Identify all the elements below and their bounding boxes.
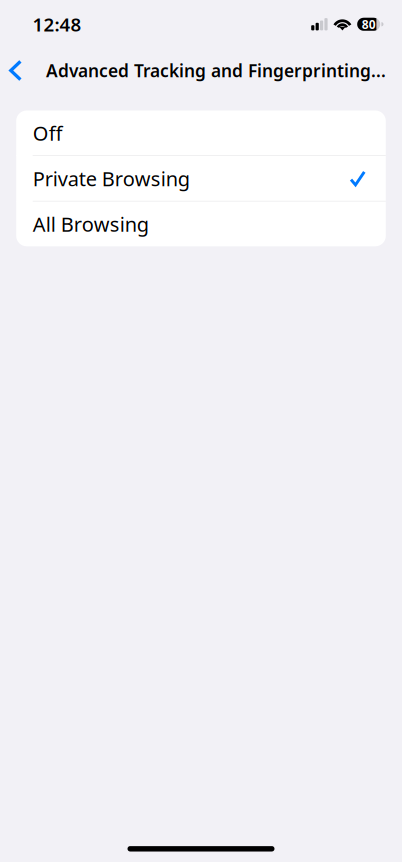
button[interactable]: All Browsing <box>16 201 386 246</box>
button[interactable]: Back <box>0 48 32 92</box>
staticText: Off <box>33 120 63 146</box>
button[interactable]: Private Browsing <box>16 156 386 201</box>
staticText: All Browsing <box>33 211 149 237</box>
staticText: 80 <box>362 16 376 32</box>
staticText: Private Browsing <box>33 165 190 192</box>
button[interactable]: Off <box>16 110 386 155</box>
staticText: 12:48 <box>32 12 81 37</box>
staticText: Advanced Tracking and Fingerprinting... <box>46 59 386 82</box>
